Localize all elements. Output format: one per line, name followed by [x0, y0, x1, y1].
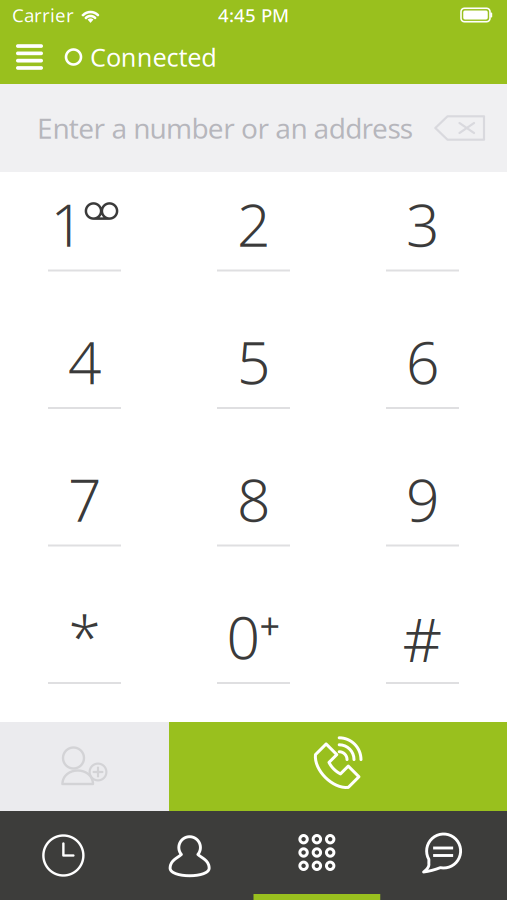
- staticText: Carrier: [12, 3, 74, 27]
- staticText: 6: [406, 322, 439, 400]
- staticText: 7: [68, 460, 101, 538]
- staticText: +: [259, 601, 280, 649]
- button[interactable]: 0: [169, 584, 338, 722]
- button[interactable]: Recents: [0, 811, 127, 900]
- staticText: 1: [50, 185, 83, 263]
- staticText: 8: [237, 460, 270, 538]
- button[interactable]: 4: [0, 309, 169, 447]
- staticText: *: [68, 597, 100, 675]
- button[interactable]: Add contact: [0, 722, 169, 811]
- button[interactable]: Contacts: [127, 811, 254, 900]
- staticText: 5: [237, 322, 270, 400]
- button[interactable]: 1: [0, 172, 169, 309]
- staticText: 9: [406, 460, 439, 538]
- button[interactable]: Menu: [0, 30, 66, 84]
- button[interactable]: 6: [338, 309, 507, 447]
- button[interactable]: 8: [169, 447, 338, 584]
- button[interactable]: *: [0, 584, 169, 722]
- button[interactable]: #: [338, 584, 507, 722]
- staticText: #: [402, 597, 442, 679]
- button[interactable]: 3: [338, 172, 507, 309]
- button[interactable]: Call: [169, 722, 507, 811]
- button[interactable]: Keypad: [253, 811, 380, 900]
- button[interactable]: 9: [338, 447, 507, 584]
- staticText: Enter a number or an address: [37, 109, 413, 147]
- staticText: 3: [406, 185, 439, 263]
- button[interactable]: Delete: [424, 84, 507, 172]
- button[interactable]: 2: [169, 172, 338, 309]
- staticText: Connected: [90, 40, 217, 74]
- button[interactable]: 5: [169, 309, 338, 447]
- staticText: 4:45 PM: [218, 3, 289, 27]
- staticText: 4: [68, 322, 101, 400]
- button[interactable]: Messages: [380, 811, 507, 900]
- button[interactable]: 7: [0, 447, 169, 584]
- staticText: 2: [237, 185, 270, 263]
- staticText: 0: [226, 597, 259, 675]
